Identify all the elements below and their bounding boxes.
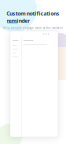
staticText: Custom notifications reminder [6, 10, 59, 24]
staticText: Help people engage more at the moment [3, 26, 63, 30]
